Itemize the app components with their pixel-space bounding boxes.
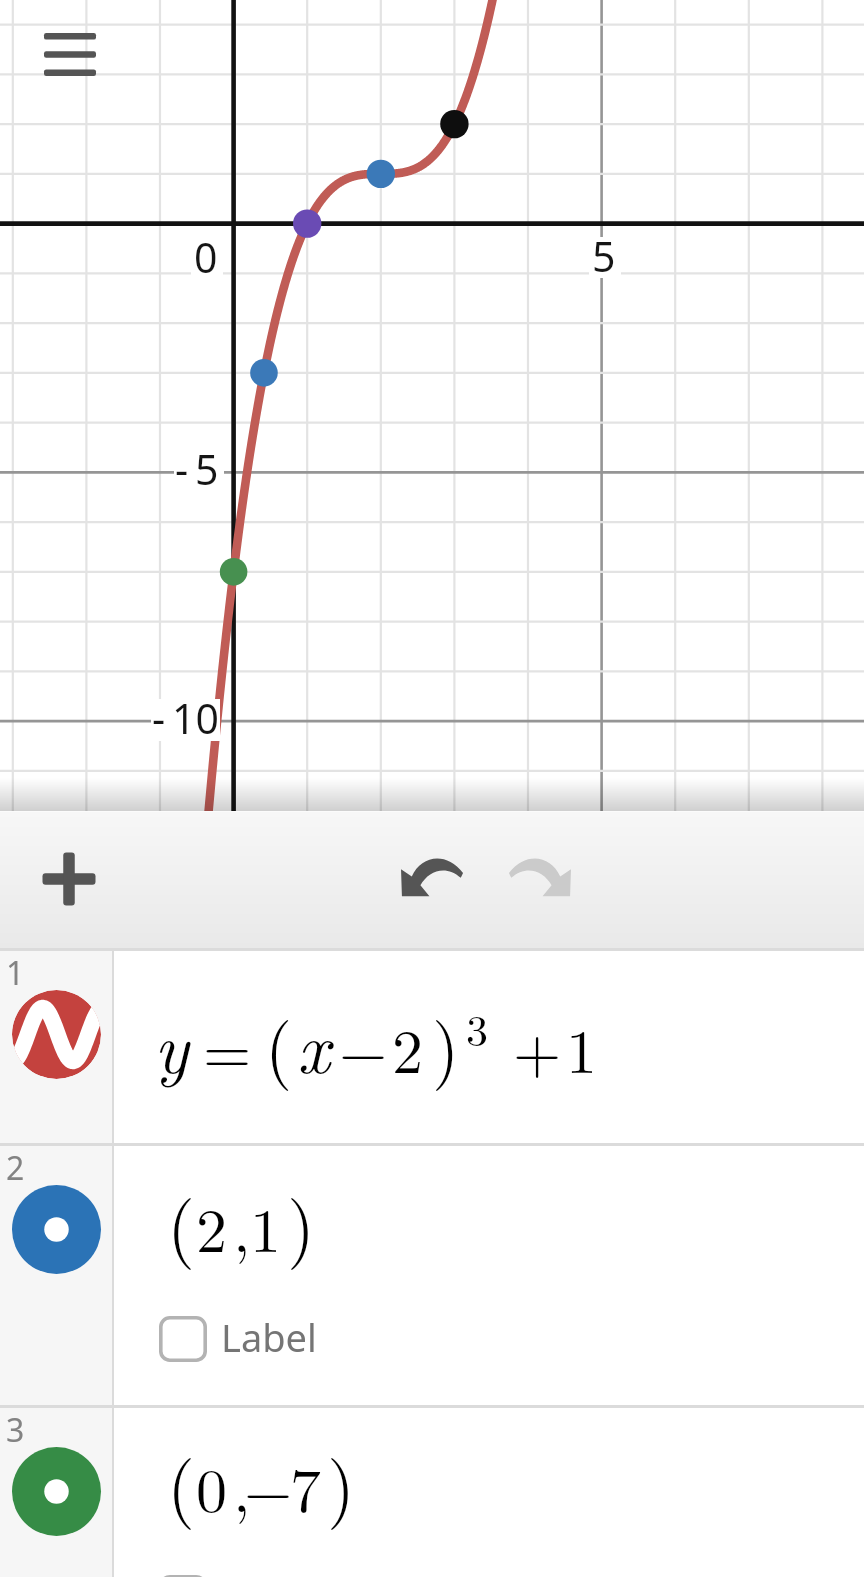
staticText: y (154, 993, 189, 1093)
staticText: 3 (6, 1408, 25, 1452)
staticText: , (233, 1442, 251, 1530)
staticText: - (175, 441, 189, 497)
staticText: 1 (566, 1003, 598, 1091)
button[interactable]: Undo (382, 838, 482, 920)
staticText: 10 (172, 690, 219, 746)
staticText: 3 (466, 996, 488, 1058)
staticText: 0 (194, 229, 218, 285)
staticText: 7 (290, 1442, 322, 1530)
staticText: 5 (592, 228, 616, 284)
staticText: 1 (250, 1182, 282, 1270)
button[interactable]: Label (159, 1574, 303, 1577)
staticText: , (233, 1182, 251, 1270)
staticText: ( (265, 994, 293, 1093)
button[interactable]: Menu (16, 6, 124, 102)
staticText: ( (167, 1171, 196, 1273)
staticText: ) (432, 994, 460, 1093)
staticText: 2 (6, 1146, 25, 1190)
staticText: x (297, 993, 330, 1093)
staticText: 1 (6, 951, 25, 995)
staticText: 0 (196, 1442, 228, 1530)
button[interactable]: Label (159, 1315, 303, 1363)
button[interactable]: 1 (0, 951, 864, 1143)
staticText: 2 (196, 1182, 228, 1270)
staticText: Label (221, 1311, 317, 1359)
staticText: ( (167, 1431, 196, 1533)
staticText: 2 (392, 1003, 424, 1091)
button[interactable]: 3 (0, 1408, 864, 1577)
staticText: ) (287, 1171, 316, 1273)
staticText: = (203, 1003, 252, 1091)
staticText: - (152, 690, 166, 746)
button[interactable]: Redo (490, 838, 590, 920)
button[interactable]: 2 (0, 1146, 864, 1405)
staticText: ) (327, 1431, 356, 1533)
staticText: − (244, 1442, 293, 1530)
staticText: + (513, 1003, 562, 1091)
button[interactable]: Add expression (19, 843, 119, 915)
staticText: 5 (195, 441, 219, 497)
staticText: − (339, 1003, 388, 1091)
